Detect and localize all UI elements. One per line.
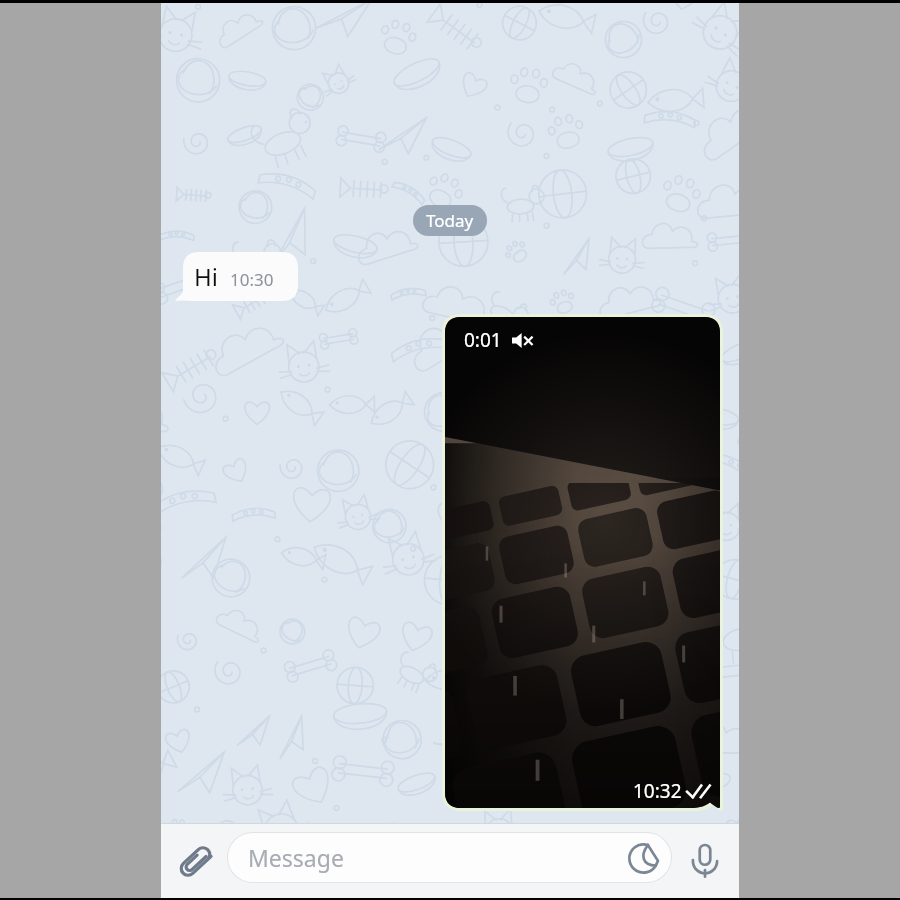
button[interactable]: Stickers (622, 837, 664, 879)
button[interactable]: Today (413, 205, 487, 236)
staticText: Today (426, 209, 474, 232)
button[interactable]: Message (228, 833, 671, 882)
staticText: 0:01 (464, 327, 502, 353)
button[interactable]: 0:01 (442, 314, 723, 811)
other: Unmute (512, 333, 533, 348)
staticText: Hi (194, 260, 218, 293)
staticText: 10:32 (633, 778, 682, 804)
button[interactable]: Attach (169, 835, 221, 887)
staticText: Message (248, 842, 344, 873)
button[interactable]: Record voice message (679, 835, 731, 887)
staticText: 10:30 (230, 268, 274, 291)
button[interactable]: Hi (175, 252, 298, 301)
